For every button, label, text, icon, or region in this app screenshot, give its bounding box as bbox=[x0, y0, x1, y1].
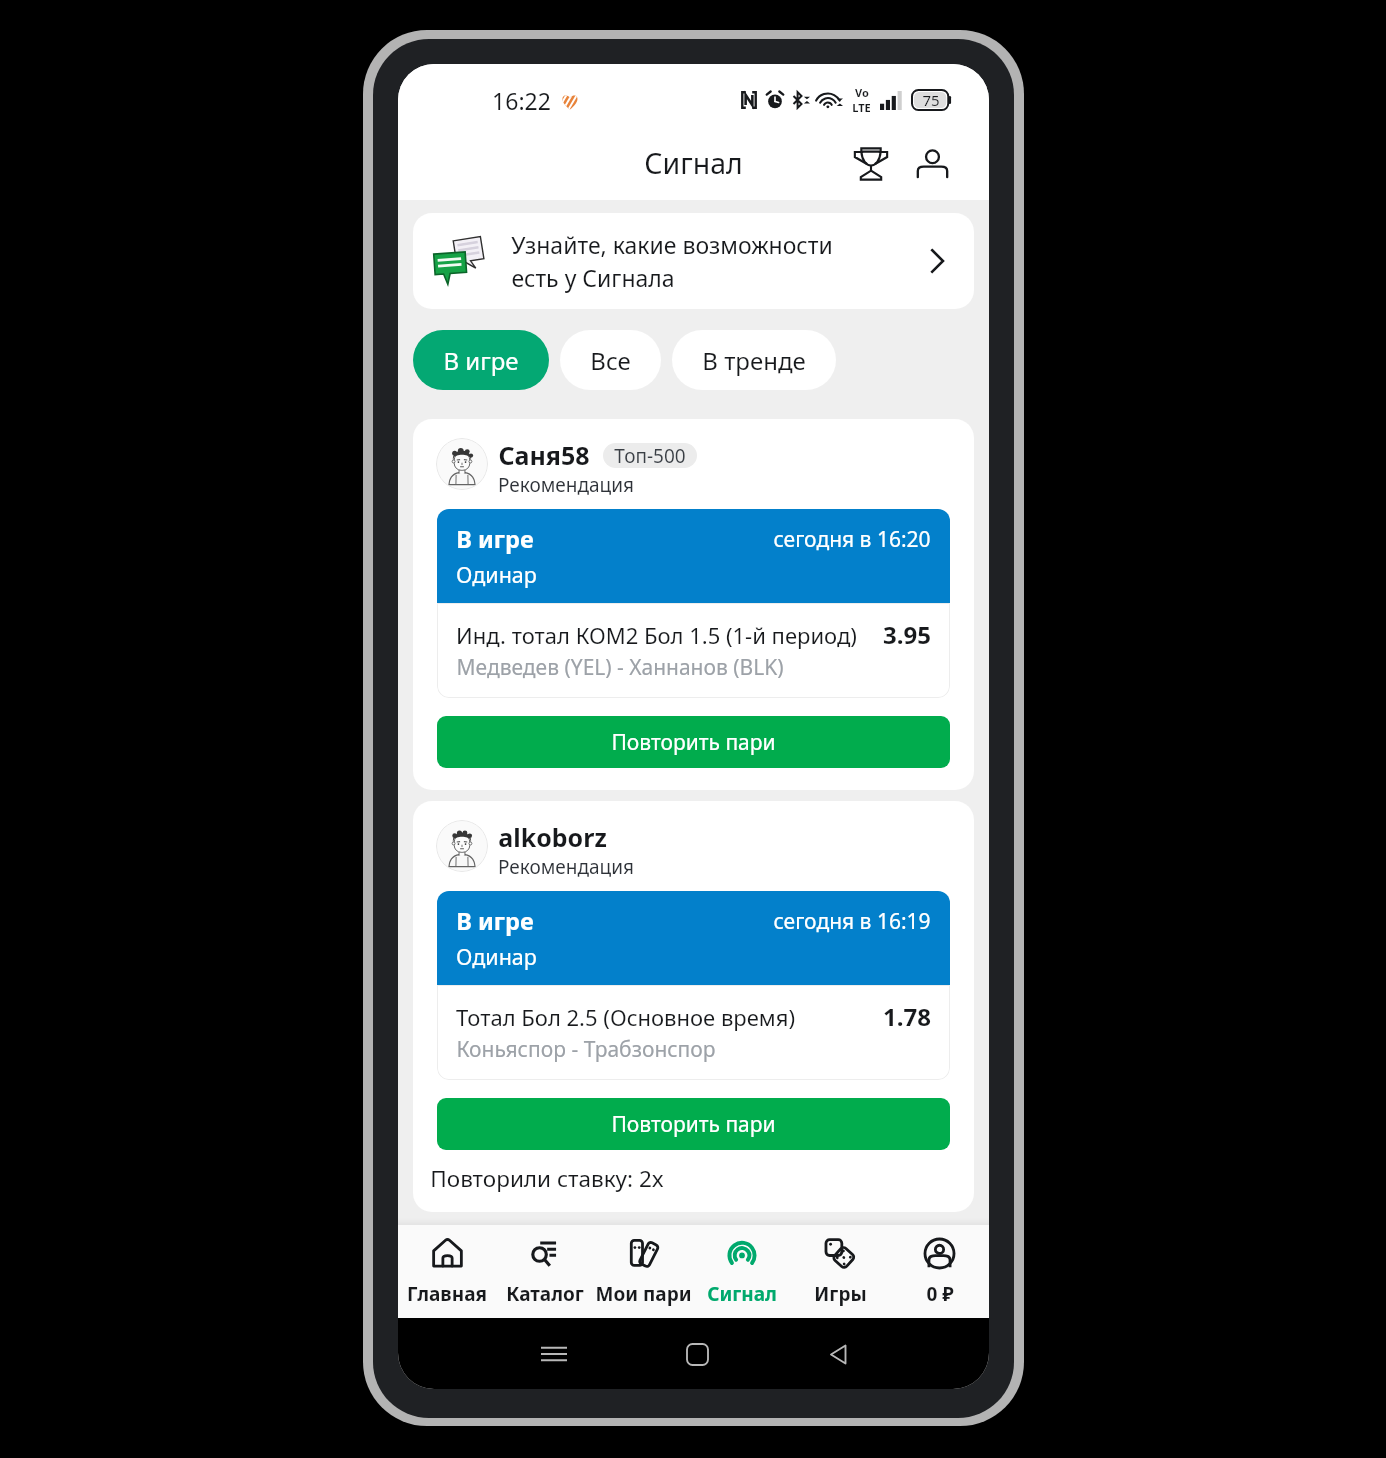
button[interactable]: Игры bbox=[791, 1225, 890, 1318]
staticText: Повторить пари bbox=[611, 1110, 776, 1139]
staticText: 0 ₽ bbox=[926, 1281, 954, 1307]
staticText: Игры bbox=[814, 1281, 867, 1307]
staticText: есть у Сигнала bbox=[511, 262, 675, 293]
staticText: Рекомендация bbox=[498, 854, 634, 880]
staticText: Главная bbox=[407, 1281, 487, 1307]
staticText: сегодня в 16:20 bbox=[773, 525, 931, 554]
button[interactable]: В игре bbox=[413, 330, 549, 390]
staticText: Инд. тотал КОМ2 Бол 1.5 (1-й период) bbox=[456, 620, 857, 650]
staticText: Повторили ставку: 2x bbox=[430, 1163, 664, 1194]
staticText: Медведев (YEL) - Ханнанов (BLK) bbox=[456, 653, 784, 682]
staticText: Одинар bbox=[456, 560, 537, 589]
button[interactable]: Главная bbox=[398, 1225, 496, 1318]
staticText: В игре bbox=[443, 344, 519, 377]
staticText: Одинар bbox=[456, 942, 537, 971]
staticText: Тотал Бол 2.5 (Основное время) bbox=[456, 1002, 795, 1032]
button[interactable]: В тренде bbox=[672, 330, 836, 390]
staticText: Узнайте, какие возможности bbox=[511, 229, 833, 260]
button[interactable]: Повторить пари bbox=[437, 1098, 950, 1150]
button[interactable]: Профиль bbox=[904, 136, 960, 192]
staticText: 3.95 bbox=[883, 618, 931, 651]
staticText: В тренде bbox=[702, 344, 806, 377]
button[interactable]: Повторить пари bbox=[437, 716, 950, 768]
button[interactable]: Недавние bbox=[526, 1326, 582, 1382]
staticText: 1.78 bbox=[883, 1000, 931, 1033]
button[interactable]: Саня58 bbox=[413, 419, 974, 790]
staticText: 75 bbox=[922, 90, 940, 110]
button[interactable]: Назад bbox=[811, 1326, 867, 1382]
staticText: LTE bbox=[852, 100, 871, 115]
staticText: Сигнал bbox=[707, 1281, 777, 1307]
button[interactable]: Мои пари bbox=[594, 1225, 692, 1318]
button[interactable]: 0 ₽ bbox=[890, 1225, 989, 1318]
staticText: alkoborz bbox=[498, 820, 607, 854]
staticText: 16:22 bbox=[492, 85, 551, 116]
button[interactable]: Каталог bbox=[496, 1225, 594, 1318]
button[interactable]: Достижения bbox=[843, 136, 899, 192]
button[interactable]: Сигнал bbox=[692, 1225, 791, 1318]
staticText: Все bbox=[590, 344, 631, 377]
staticText: Рекомендация bbox=[498, 472, 634, 498]
staticText: сегодня в 16:19 bbox=[773, 907, 931, 936]
staticText: Мои пари bbox=[595, 1281, 692, 1307]
staticText: Повторить пари bbox=[611, 728, 776, 757]
staticText: Vo bbox=[855, 85, 869, 100]
staticText: В игре bbox=[456, 523, 534, 555]
staticText: Каталог bbox=[506, 1281, 584, 1307]
button[interactable]: Домой bbox=[669, 1326, 725, 1382]
staticText: Сигнал bbox=[644, 144, 743, 183]
staticText: В игре bbox=[456, 905, 534, 937]
staticText: Саня58 bbox=[498, 438, 590, 472]
button[interactable]: alkoborz bbox=[413, 801, 974, 1212]
staticText: Коньяспор - Трабзонспор bbox=[456, 1035, 716, 1064]
button[interactable]: Узнайте, какие возможности bbox=[413, 213, 974, 309]
staticText: Топ-500 bbox=[614, 443, 686, 468]
button[interactable]: Все bbox=[560, 330, 661, 390]
